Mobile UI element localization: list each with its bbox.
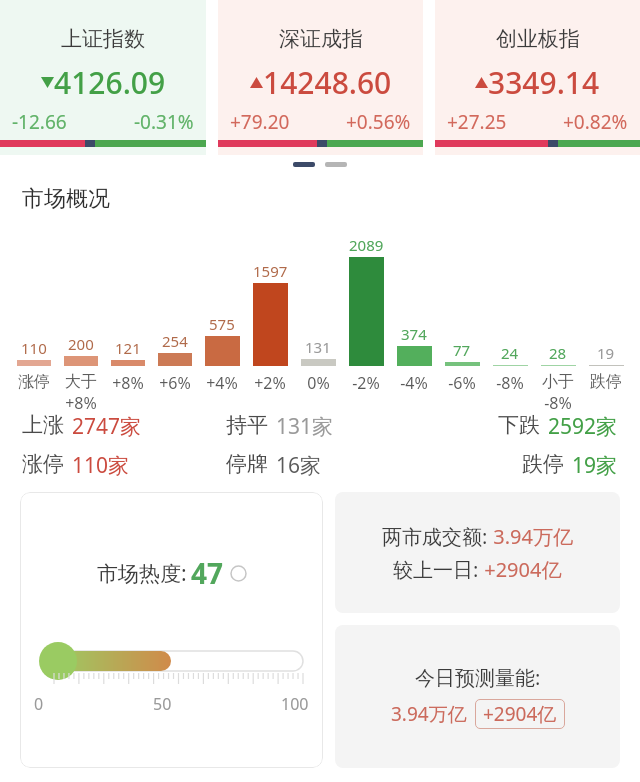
staticText: 创业板指 bbox=[496, 26, 580, 52]
staticText: 16家 bbox=[276, 451, 322, 480]
button[interactable]: 创业板指 bbox=[435, 0, 640, 155]
staticText: 市场热度: bbox=[97, 559, 187, 588]
staticText: 50 bbox=[153, 693, 172, 715]
staticText: 大于 bbox=[65, 372, 97, 392]
staticText: 3.94万亿 bbox=[391, 701, 467, 727]
staticText: 跌停 bbox=[590, 372, 622, 392]
staticText: 77 bbox=[453, 340, 471, 360]
staticText: 跌停 bbox=[522, 451, 564, 477]
staticText: 121 bbox=[115, 338, 141, 358]
staticText: -4% bbox=[400, 372, 428, 394]
button[interactable]: 上证指数 bbox=[0, 0, 206, 155]
staticText: +79.20 bbox=[230, 109, 290, 135]
other: 帮助 bbox=[230, 565, 247, 582]
staticText: 131 bbox=[305, 337, 331, 357]
staticText: +4% bbox=[206, 372, 238, 394]
staticText: 374 bbox=[401, 324, 427, 344]
staticText: 较上一日: bbox=[393, 556, 479, 583]
staticText: 254 bbox=[162, 331, 188, 351]
staticText: 3.94万亿 bbox=[488, 523, 573, 550]
staticText: +2904亿 bbox=[479, 556, 562, 583]
staticText: +27.25 bbox=[447, 109, 507, 135]
staticText: -8% bbox=[544, 392, 572, 412]
staticText: 下跌 bbox=[498, 412, 540, 438]
staticText: -0.31% bbox=[134, 109, 194, 135]
staticText: -6% bbox=[448, 372, 476, 394]
staticText: 28 bbox=[549, 343, 567, 363]
staticText: +2904亿 bbox=[483, 701, 557, 727]
button[interactable]: 今日预测量能: bbox=[335, 625, 620, 768]
staticText: 两市成交额: bbox=[382, 523, 488, 550]
staticText: 上涨 bbox=[22, 412, 64, 438]
staticText: 200 bbox=[68, 334, 94, 354]
staticText: 0% bbox=[307, 372, 330, 394]
staticText: 涨停 bbox=[18, 372, 50, 392]
staticText: 47 bbox=[191, 554, 224, 592]
staticText: 575 bbox=[209, 314, 235, 334]
staticText: 上证指数 bbox=[61, 26, 145, 52]
staticText: 2747家 bbox=[72, 412, 142, 441]
staticText: 4126.09 bbox=[54, 62, 166, 103]
staticText: 110 bbox=[21, 338, 47, 358]
staticText: 持平 bbox=[226, 412, 268, 438]
staticText: +0.56% bbox=[346, 109, 411, 135]
staticText: +8% bbox=[65, 392, 97, 412]
staticText: 3349.14 bbox=[488, 62, 600, 103]
staticText: -12.66 bbox=[12, 109, 67, 135]
button[interactable]: 市场热度: bbox=[20, 492, 323, 768]
staticText: 市场概况 bbox=[22, 185, 110, 213]
staticText: 19家 bbox=[572, 451, 618, 480]
staticText: +8% bbox=[112, 372, 144, 394]
staticText: 0 bbox=[34, 693, 44, 715]
button[interactable]: 两市成交额: bbox=[335, 492, 620, 613]
staticText: 14248.60 bbox=[263, 62, 392, 103]
staticText: 涨停 bbox=[22, 451, 64, 477]
staticText: 深证成指 bbox=[279, 26, 363, 52]
staticText: 19 bbox=[597, 343, 615, 363]
staticText: 100 bbox=[281, 693, 309, 715]
staticText: -2% bbox=[352, 372, 380, 394]
staticText: +0.82% bbox=[563, 109, 628, 135]
staticText: +2% bbox=[254, 372, 286, 394]
staticText: 1597 bbox=[253, 261, 288, 281]
staticText: 停牌 bbox=[226, 451, 268, 477]
staticText: +6% bbox=[159, 372, 191, 394]
button[interactable]: 深证成指 bbox=[218, 0, 423, 155]
staticText: 110家 bbox=[72, 451, 130, 480]
staticText: 2089 bbox=[349, 235, 384, 255]
staticText: 24 bbox=[501, 343, 519, 363]
staticText: -8% bbox=[496, 372, 524, 394]
staticText: 2592家 bbox=[548, 412, 618, 441]
staticText: 131家 bbox=[276, 412, 334, 441]
staticText: 今日预测量能: bbox=[415, 664, 541, 691]
staticText: 小于 bbox=[542, 372, 574, 392]
